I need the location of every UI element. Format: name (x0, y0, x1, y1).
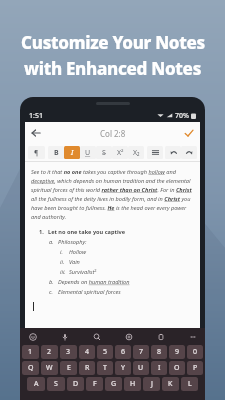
staticText: 2 (47, 347, 52, 357)
button[interactable]: B (48, 146, 64, 159)
button[interactable]: Undo (165, 146, 181, 159)
staticText: b. (49, 278, 54, 286)
staticText: U (85, 148, 91, 158)
button[interactable]: P (187, 361, 203, 375)
button[interactable]: K (162, 377, 179, 391)
button[interactable]: E (60, 361, 77, 375)
button[interactable]: 3 (60, 345, 77, 359)
button[interactable]: Y (115, 361, 131, 375)
button[interactable]: 7 (133, 345, 149, 359)
button[interactable]: Bullet list (147, 146, 163, 159)
staticText: 9 (175, 347, 180, 357)
staticText: Vain (69, 258, 80, 266)
staticText: 4 (85, 347, 90, 357)
button[interactable]: G (105, 377, 122, 391)
staticText: A (34, 379, 39, 389)
staticText: R (85, 363, 90, 373)
button[interactable]: S (47, 377, 65, 391)
staticText: L (188, 379, 192, 389)
staticText: Let no one take you captive (48, 228, 126, 236)
staticText: 7 (139, 347, 144, 357)
staticText: 1 (28, 347, 33, 357)
button[interactable]: H (124, 377, 141, 391)
button[interactable]: 9 (169, 345, 185, 359)
button[interactable]: A (27, 377, 45, 391)
staticText: F (93, 379, 97, 389)
button[interactable]: Search (90, 330, 103, 343)
button[interactable]: More options (186, 330, 199, 343)
button[interactable]: ¶ (28, 146, 45, 159)
staticText: X₂ (133, 148, 140, 158)
button[interactable]: T (97, 361, 113, 375)
button[interactable]: Q (22, 361, 39, 375)
staticText: Customize Your Notes (21, 31, 205, 54)
staticText: Hollow (69, 248, 86, 256)
staticText: 5 (103, 347, 108, 357)
staticText: Elemental spiritual forces (58, 288, 121, 296)
button[interactable]: U (80, 146, 96, 159)
staticText: 3 (66, 347, 71, 357)
button[interactable]: U (133, 361, 149, 375)
button[interactable]: F (86, 377, 103, 391)
staticText: 1:51 (29, 111, 43, 121)
staticText: Survivalist2 (69, 268, 97, 276)
staticText: ¶ (34, 148, 39, 158)
button[interactable]: 4 (79, 345, 95, 359)
button[interactable]: Save (178, 122, 200, 144)
staticText: D (73, 379, 79, 389)
button[interactable]: 2 (41, 345, 58, 359)
button[interactable]: O (169, 361, 185, 375)
button[interactable]: J (143, 377, 160, 391)
button[interactable]: L (181, 377, 198, 391)
staticText: c. (49, 288, 53, 296)
staticText: with Enhanced Notes (24, 57, 201, 80)
button[interactable]: Keyboard settings (122, 330, 135, 343)
staticText: Col 2:8 (100, 128, 126, 139)
staticText: i. (60, 248, 63, 256)
staticText: 70% (175, 111, 189, 121)
staticText: U (138, 363, 144, 373)
staticText: 8 (157, 347, 162, 357)
button[interactable]: Redo (181, 146, 197, 159)
staticText: Depends on human tradition (58, 278, 130, 286)
staticText: X² (117, 148, 124, 158)
staticText: O (174, 363, 180, 373)
staticText: I (158, 363, 161, 373)
staticText: E (67, 363, 71, 373)
button[interactable]: W (41, 361, 58, 375)
button[interactable]: X₂ (128, 146, 144, 159)
button[interactable]: 6 (115, 345, 131, 359)
button[interactable]: 0 (187, 345, 203, 359)
button[interactable]: 8 (151, 345, 167, 359)
button[interactable]: Clipboard (154, 330, 167, 343)
staticText: Y (121, 363, 125, 373)
staticText: S (102, 148, 106, 158)
staticText: ii. (60, 258, 65, 266)
staticText: T (103, 363, 107, 373)
staticText: See to it that no one takes you captive … (31, 168, 194, 220)
button[interactable]: Back (25, 122, 47, 144)
button[interactable]: 1 (22, 345, 39, 359)
staticText: Q (28, 363, 34, 373)
staticText: H (130, 379, 136, 389)
button[interactable]: Emoji (26, 330, 39, 343)
button[interactable]: Voice input (58, 330, 71, 343)
staticText: K (168, 379, 173, 389)
staticText: 0 (193, 347, 198, 357)
staticText: 6 (121, 347, 126, 357)
button[interactable]: 5 (97, 345, 113, 359)
button[interactable]: S (96, 146, 112, 159)
button[interactable]: R (79, 361, 95, 375)
staticText: Philosophy: (58, 238, 87, 246)
staticText: G (111, 379, 117, 389)
staticText: J (151, 379, 153, 389)
staticText: I (71, 148, 74, 158)
staticText: S (54, 379, 58, 389)
button[interactable]: D (67, 377, 84, 391)
button[interactable]: I (64, 146, 80, 159)
staticText: iii. (60, 268, 66, 276)
button[interactable]: I (151, 361, 167, 375)
staticText: B (54, 148, 59, 158)
staticText: P (193, 363, 198, 373)
button[interactable]: X² (112, 146, 128, 159)
